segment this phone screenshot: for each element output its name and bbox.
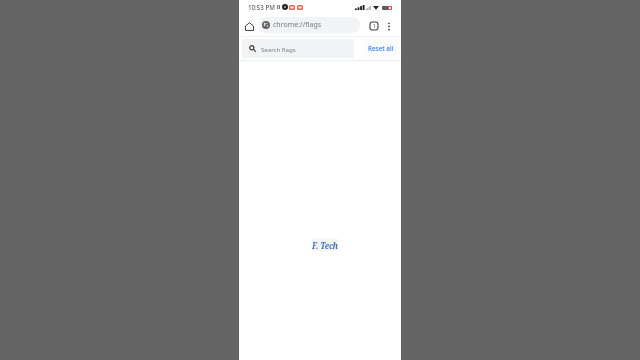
button[interactable]: Home <box>242 19 256 33</box>
button[interactable]: Reset all <box>363 38 398 59</box>
staticText: 10:53 PM <box>248 3 275 11</box>
staticText: Reset all <box>368 44 394 53</box>
staticText: chrome://flags <box>273 20 322 30</box>
button[interactable]: More options <box>383 20 395 32</box>
staticText: Search flags <box>261 45 296 53</box>
staticText: 1 <box>373 23 376 29</box>
button[interactable]: Search flags <box>242 39 354 58</box>
button[interactable]: chrome://flags <box>259 17 360 33</box>
button[interactable]: Tabs <box>367 19 381 33</box>
staticText: F. Tech <box>312 239 338 251</box>
